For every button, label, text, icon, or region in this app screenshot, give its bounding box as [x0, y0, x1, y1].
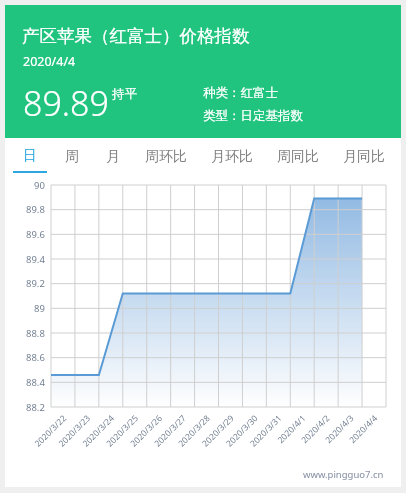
button[interactable]: 月同比	[331, 138, 397, 175]
button[interactable]: 周同比	[265, 138, 331, 175]
button[interactable]: 日	[9, 138, 51, 175]
button[interactable]: 周环比	[133, 138, 199, 175]
staticText: 周环比	[145, 148, 187, 166]
staticText: 2020/4/4	[23, 53, 76, 70]
staticText: 89.89	[23, 80, 109, 126]
button[interactable]: 周	[51, 138, 92, 175]
staticText: 月同比	[343, 148, 385, 166]
staticText: 产区苹果（红富士）价格指数	[22, 25, 250, 47]
staticText: 月环比	[211, 148, 253, 166]
staticText: 类型：日定基指数	[203, 108, 303, 124]
button[interactable]: 月	[92, 138, 133, 175]
staticText: 日	[23, 147, 37, 165]
staticText: 周同比	[277, 148, 319, 166]
staticText: 持平	[112, 86, 137, 102]
staticText: 周	[65, 148, 79, 166]
staticText: 月	[106, 148, 120, 166]
button[interactable]: 月环比	[199, 138, 265, 175]
staticText: 种类：红富士	[203, 85, 278, 101]
